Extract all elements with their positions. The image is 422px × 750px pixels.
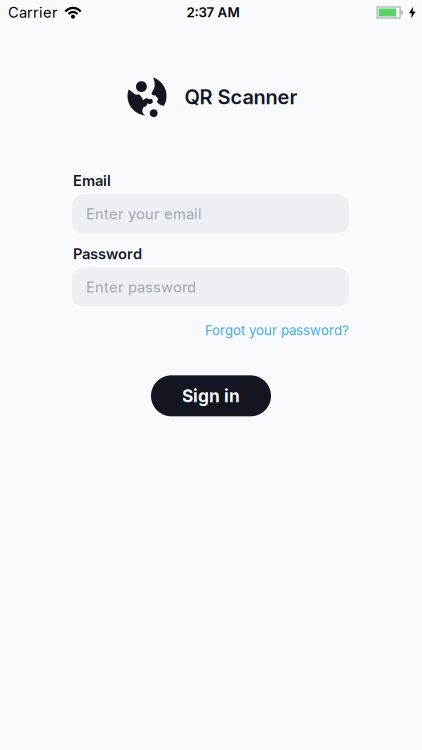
staticText: Password [73, 245, 142, 263]
button[interactable]: Password [72, 268, 349, 307]
staticText: Enter your email [86, 205, 202, 222]
staticText: Carrier [8, 4, 58, 21]
staticText: Email [73, 172, 111, 189]
staticText: Enter password [86, 278, 196, 296]
staticText: Sign in [182, 386, 240, 406]
button[interactable]: Forgot your password? [205, 323, 349, 338]
button[interactable]: Email [72, 194, 349, 233]
staticText: Forgot your password? [205, 323, 349, 338]
staticText: QR Scanner [184, 85, 297, 109]
staticText: 2:37 AM [186, 5, 239, 20]
button[interactable]: Sign in [151, 375, 271, 416]
